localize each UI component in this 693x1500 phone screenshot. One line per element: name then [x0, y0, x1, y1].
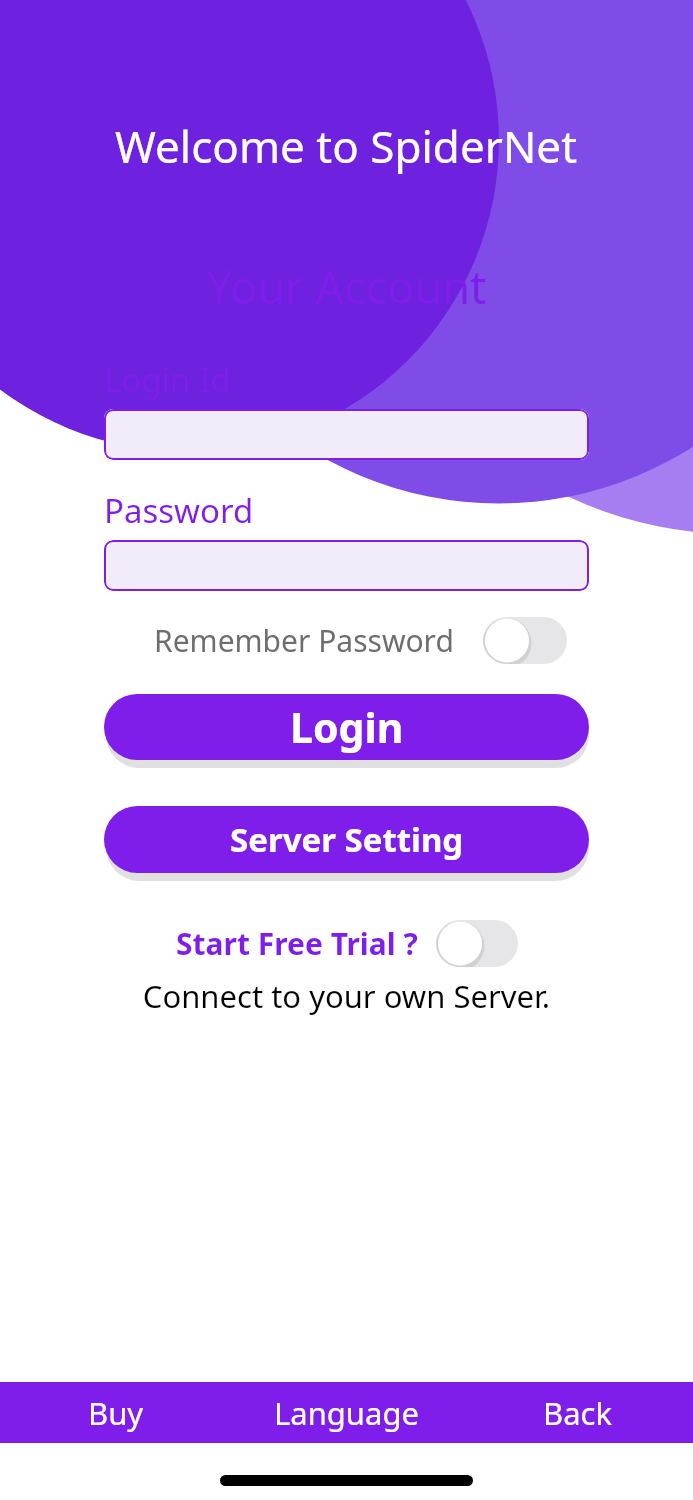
button[interactable]: Server Setting [104, 806, 589, 873]
button[interactable]: Buy [0, 1382, 231, 1443]
staticText: Remember Password [154, 620, 454, 661]
staticText: Language [274, 1392, 419, 1434]
staticText: Welcome to SpiderNet [115, 116, 578, 176]
button[interactable]: Remember Password [483, 617, 567, 664]
staticText: Login Id [104, 357, 231, 402]
staticText: Login [290, 699, 404, 755]
staticText: Password [104, 488, 254, 533]
staticText: Back [543, 1392, 612, 1434]
button[interactable]: Language [231, 1382, 462, 1443]
button[interactable]: Login Id [104, 409, 589, 460]
staticText: Start Free Trial ? [176, 923, 418, 964]
button[interactable]: Start Free Trial [436, 920, 518, 967]
button[interactable]: Back [462, 1382, 693, 1443]
button[interactable]: Login [104, 694, 589, 760]
staticText: Server Setting [230, 817, 464, 862]
staticText: Buy [88, 1392, 144, 1434]
staticText: Your Account [0, 256, 693, 317]
button[interactable]: Password [104, 540, 589, 591]
staticText: Connect to your own Server. [0, 975, 693, 1017]
